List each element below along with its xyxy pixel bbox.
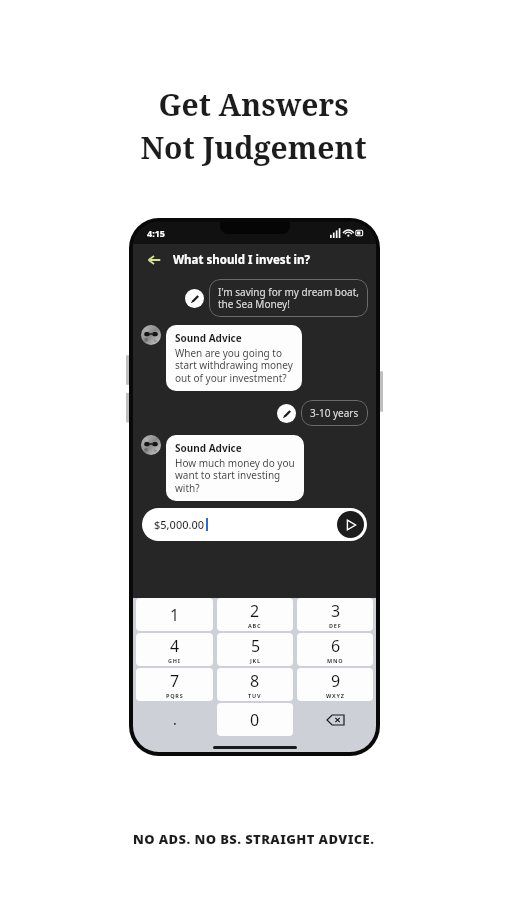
button[interactable]: Sound Advice [141,325,376,391]
staticText: . [173,710,177,729]
staticText: 3 [331,600,341,622]
staticText: 3-10 years [310,406,359,420]
button[interactable]: 9 [297,668,373,701]
staticText: 1 [170,604,180,626]
staticText: 8 [250,670,260,692]
button[interactable]: I'm saving for my dream boat, the Sea Mo… [133,279,368,317]
button[interactable]: 3 [297,598,373,631]
staticText: WXYZ [326,692,345,699]
staticText: NO ADS. NO BS. STRAIGHT ADVICE. [133,830,375,848]
staticText: Not Judgement [140,127,367,168]
staticText: 7 [170,670,180,692]
button[interactable]: 4 [136,633,213,666]
button[interactable]: Sound Advice [141,435,376,501]
button[interactable]: 8 [217,668,293,701]
button[interactable]: 5 [217,633,293,666]
staticText: How much money do you want to start inve… [175,456,295,495]
button[interactable]: Back [143,249,165,271]
button[interactable]: 3-10 years [133,400,368,426]
staticText: ABC [248,622,262,629]
button[interactable]: 0 [217,703,293,736]
staticText: Sound Advice [175,441,242,455]
button[interactable]: . [134,703,215,736]
staticText: I'm saving for my dream boat, the Sea Mo… [218,285,359,311]
staticText: 4 [170,635,180,657]
button[interactable]: 7 [136,668,213,701]
button[interactable]: 6 [297,633,373,666]
button[interactable]: Send [337,511,364,538]
staticText: TUV [248,692,262,699]
staticText: What should I invest in? [173,252,311,268]
staticText: 5 [251,635,261,657]
staticText: 0 [250,709,260,731]
button[interactable]: Backspace [295,703,375,736]
staticText: GHI [168,657,181,664]
staticText: DEF [329,622,342,629]
staticText: JKL [250,657,261,664]
staticText: 9 [331,670,341,692]
button[interactable]: 1 [136,598,213,631]
staticText: When are you going to start withdrawing … [175,346,293,385]
staticText: 6 [331,635,341,657]
button[interactable]: 2 [217,598,293,631]
staticText: Sound Advice [175,331,242,345]
staticText: 4:15 [147,227,165,239]
staticText: $5,000.00 [154,517,205,532]
button[interactable]: $5,000.00 [142,508,367,541]
staticText: 2 [250,600,260,622]
staticText: Get Answers [158,84,349,125]
staticText: MNO [327,657,344,664]
staticText: PQRS [166,692,184,699]
